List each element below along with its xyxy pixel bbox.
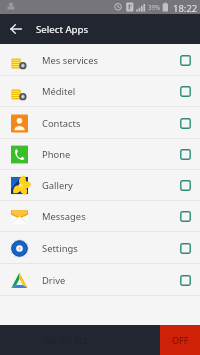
button[interactable]: Select Drive	[175, 270, 196, 291]
staticText: Drive	[42, 274, 66, 287]
button[interactable]: Drive	[0, 264, 200, 296]
button[interactable]: Phone	[0, 139, 200, 170]
button[interactable]: Select Mes services	[175, 50, 196, 71]
staticText: 18:22	[173, 2, 198, 15]
button[interactable]: Mes services	[0, 44, 200, 76]
button[interactable]: Select Settings	[175, 238, 196, 259]
staticText: Select Apps	[36, 23, 89, 36]
button[interactable]: Back	[0, 14, 31, 44]
staticText: Mes services	[42, 54, 98, 67]
button[interactable]: Méditel	[0, 76, 200, 107]
staticText: Phone	[42, 148, 71, 161]
staticText: Settings	[42, 242, 78, 255]
button[interactable]: Contacts	[0, 107, 200, 139]
button[interactable]: Select Messages	[175, 206, 196, 227]
button[interactable]: Select Phone	[175, 144, 196, 165]
staticText: 39%	[148, 3, 161, 11]
staticText: OFF	[172, 334, 189, 346]
staticText: Méditel	[42, 85, 76, 98]
staticText: Messages	[42, 210, 86, 223]
button[interactable]: Gallery	[0, 170, 200, 201]
staticText: Contacts	[42, 117, 81, 130]
button[interactable]: Select Contacts	[175, 113, 196, 134]
button[interactable]: Select Méditel	[175, 81, 196, 102]
button[interactable]: Settings	[0, 232, 200, 264]
button[interactable]: OFF	[160, 325, 200, 355]
staticText: Gallery	[42, 179, 73, 192]
button[interactable]: Messages	[0, 201, 200, 232]
button[interactable]: Select Gallery	[175, 175, 196, 196]
